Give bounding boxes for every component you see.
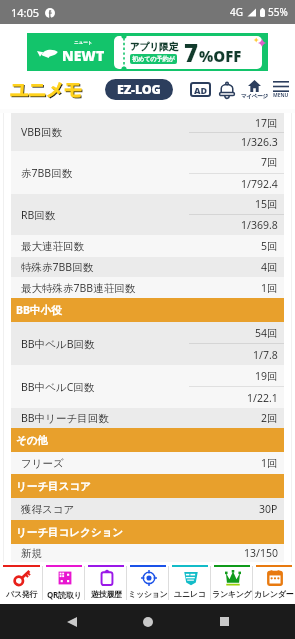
button[interactable]: ミッション xyxy=(127,562,169,604)
staticText: カレンダー xyxy=(254,589,294,599)
staticText: QR読取り xyxy=(47,589,82,600)
button[interactable]: BB中ベルC回数 xyxy=(11,365,284,408)
staticText: 4回 xyxy=(261,260,278,274)
staticText: BB中ベルB回数 xyxy=(21,337,189,351)
staticText: その他 xyxy=(16,434,48,447)
staticText: ニュート xyxy=(74,40,93,46)
staticText: BB中小役 xyxy=(16,303,62,317)
button[interactable]: ユニレコ xyxy=(169,562,211,604)
staticText: ミッション xyxy=(128,589,168,599)
staticText: 7回 xyxy=(261,155,278,169)
staticText: リーチ目スコア xyxy=(16,480,91,493)
staticText: リーチ目コレクション xyxy=(16,526,123,539)
staticText: フリーズ xyxy=(21,457,261,470)
button[interactable]: Advertisement xyxy=(190,82,211,97)
staticText: MENU xyxy=(273,92,289,99)
button[interactable]: 遊技履歴 xyxy=(85,562,127,604)
button[interactable]: Notifications xyxy=(219,81,235,99)
staticText: 1回 xyxy=(261,456,278,470)
button[interactable]: 赤7BB回数 xyxy=(11,151,284,194)
button[interactable]: 獲得スコア xyxy=(11,498,284,520)
button[interactable]: BB中ベルB回数 xyxy=(11,322,284,365)
staticText: 15回 xyxy=(255,197,278,211)
button[interactable]: VBB回数 xyxy=(11,113,284,151)
staticText: ユニメモ xyxy=(11,80,84,100)
staticText: 5回 xyxy=(261,239,278,253)
button[interactable]: BB中小役 xyxy=(11,298,284,322)
button[interactable]: その他 xyxy=(11,428,284,452)
button[interactable]: BB中リーチ目回数 xyxy=(11,408,284,428)
staticText: アプリ限定 xyxy=(130,41,179,53)
button[interactable]: ユニメモ xyxy=(7,80,87,100)
staticText: ユニレコ xyxy=(174,589,206,599)
staticText: 55% xyxy=(268,5,288,19)
staticText: VBB回数 xyxy=(21,125,189,139)
staticText: BB中リーチ目回数 xyxy=(21,411,261,425)
button[interactable]: Home xyxy=(143,617,153,627)
staticText: 17回 xyxy=(255,116,278,130)
staticText: 赤7BB回数 xyxy=(21,166,189,180)
staticText: 最大連荘回数 xyxy=(21,240,261,253)
button[interactable]: 最大連荘回数 xyxy=(11,235,284,257)
staticText: 13/150 xyxy=(244,546,278,560)
staticText: 1回 xyxy=(261,281,278,295)
staticText: EZ-LOG xyxy=(117,81,161,98)
staticText: 1/7.8 xyxy=(253,348,278,362)
staticText: 1/369.8 xyxy=(241,218,278,232)
staticText: 初めての予約が xyxy=(132,55,175,63)
button[interactable]: QR読取り xyxy=(43,562,85,604)
staticText: パス発行 xyxy=(6,589,38,599)
staticText: 1/22.1 xyxy=(247,391,278,405)
staticText: 7 xyxy=(184,36,199,69)
staticText: 1/326.3 xyxy=(241,135,278,149)
button[interactable]: Back xyxy=(67,617,77,627)
button[interactable]: ランキング xyxy=(211,562,253,604)
staticText: ユニメモ xyxy=(10,79,83,99)
staticText: ランキング xyxy=(212,589,252,599)
button[interactable]: カレンダー xyxy=(253,562,295,604)
staticText: NEWT xyxy=(62,46,105,65)
button[interactable]: リーチ目コレクション xyxy=(11,520,284,544)
staticText: 19回 xyxy=(255,369,278,383)
staticText: 4G xyxy=(230,5,243,19)
staticText: 獲得スコア xyxy=(21,503,259,516)
staticText: 遊技履歴 xyxy=(91,589,122,599)
staticText: RB回数 xyxy=(21,208,189,222)
button[interactable]: RB回数 xyxy=(11,194,284,235)
staticText: 1/792.4 xyxy=(241,177,278,191)
staticText: マイページ xyxy=(241,93,269,100)
button[interactable]: パス発行 xyxy=(0,562,43,604)
button[interactable]: Menu xyxy=(271,81,291,99)
button[interactable]: フリーズ xyxy=(11,452,284,474)
staticText: 新規 xyxy=(21,547,244,560)
button[interactable]: 特殊赤7BB回数 xyxy=(11,257,284,277)
button[interactable]: 新規 xyxy=(11,544,284,562)
button[interactable]: EZ-LOG xyxy=(105,79,173,100)
button[interactable]: リーチ目スコア xyxy=(11,474,284,498)
staticText: 最大特殊赤7BB連荘回数 xyxy=(21,281,261,295)
staticText: AD xyxy=(194,84,208,96)
button[interactable]: マイページ xyxy=(238,80,271,100)
staticText: 14:05 xyxy=(11,5,40,20)
staticText: 2回 xyxy=(261,411,278,425)
staticText: 30P xyxy=(259,502,278,516)
staticText: 54回 xyxy=(255,326,278,340)
button[interactable]: ニュート xyxy=(27,33,268,71)
staticText: 特殊赤7BB回数 xyxy=(21,260,261,274)
button[interactable]: 最大特殊赤7BB連荘回数 xyxy=(11,277,284,298)
staticText: %OFF xyxy=(199,46,242,66)
staticText: BB中ベルC回数 xyxy=(21,380,189,394)
